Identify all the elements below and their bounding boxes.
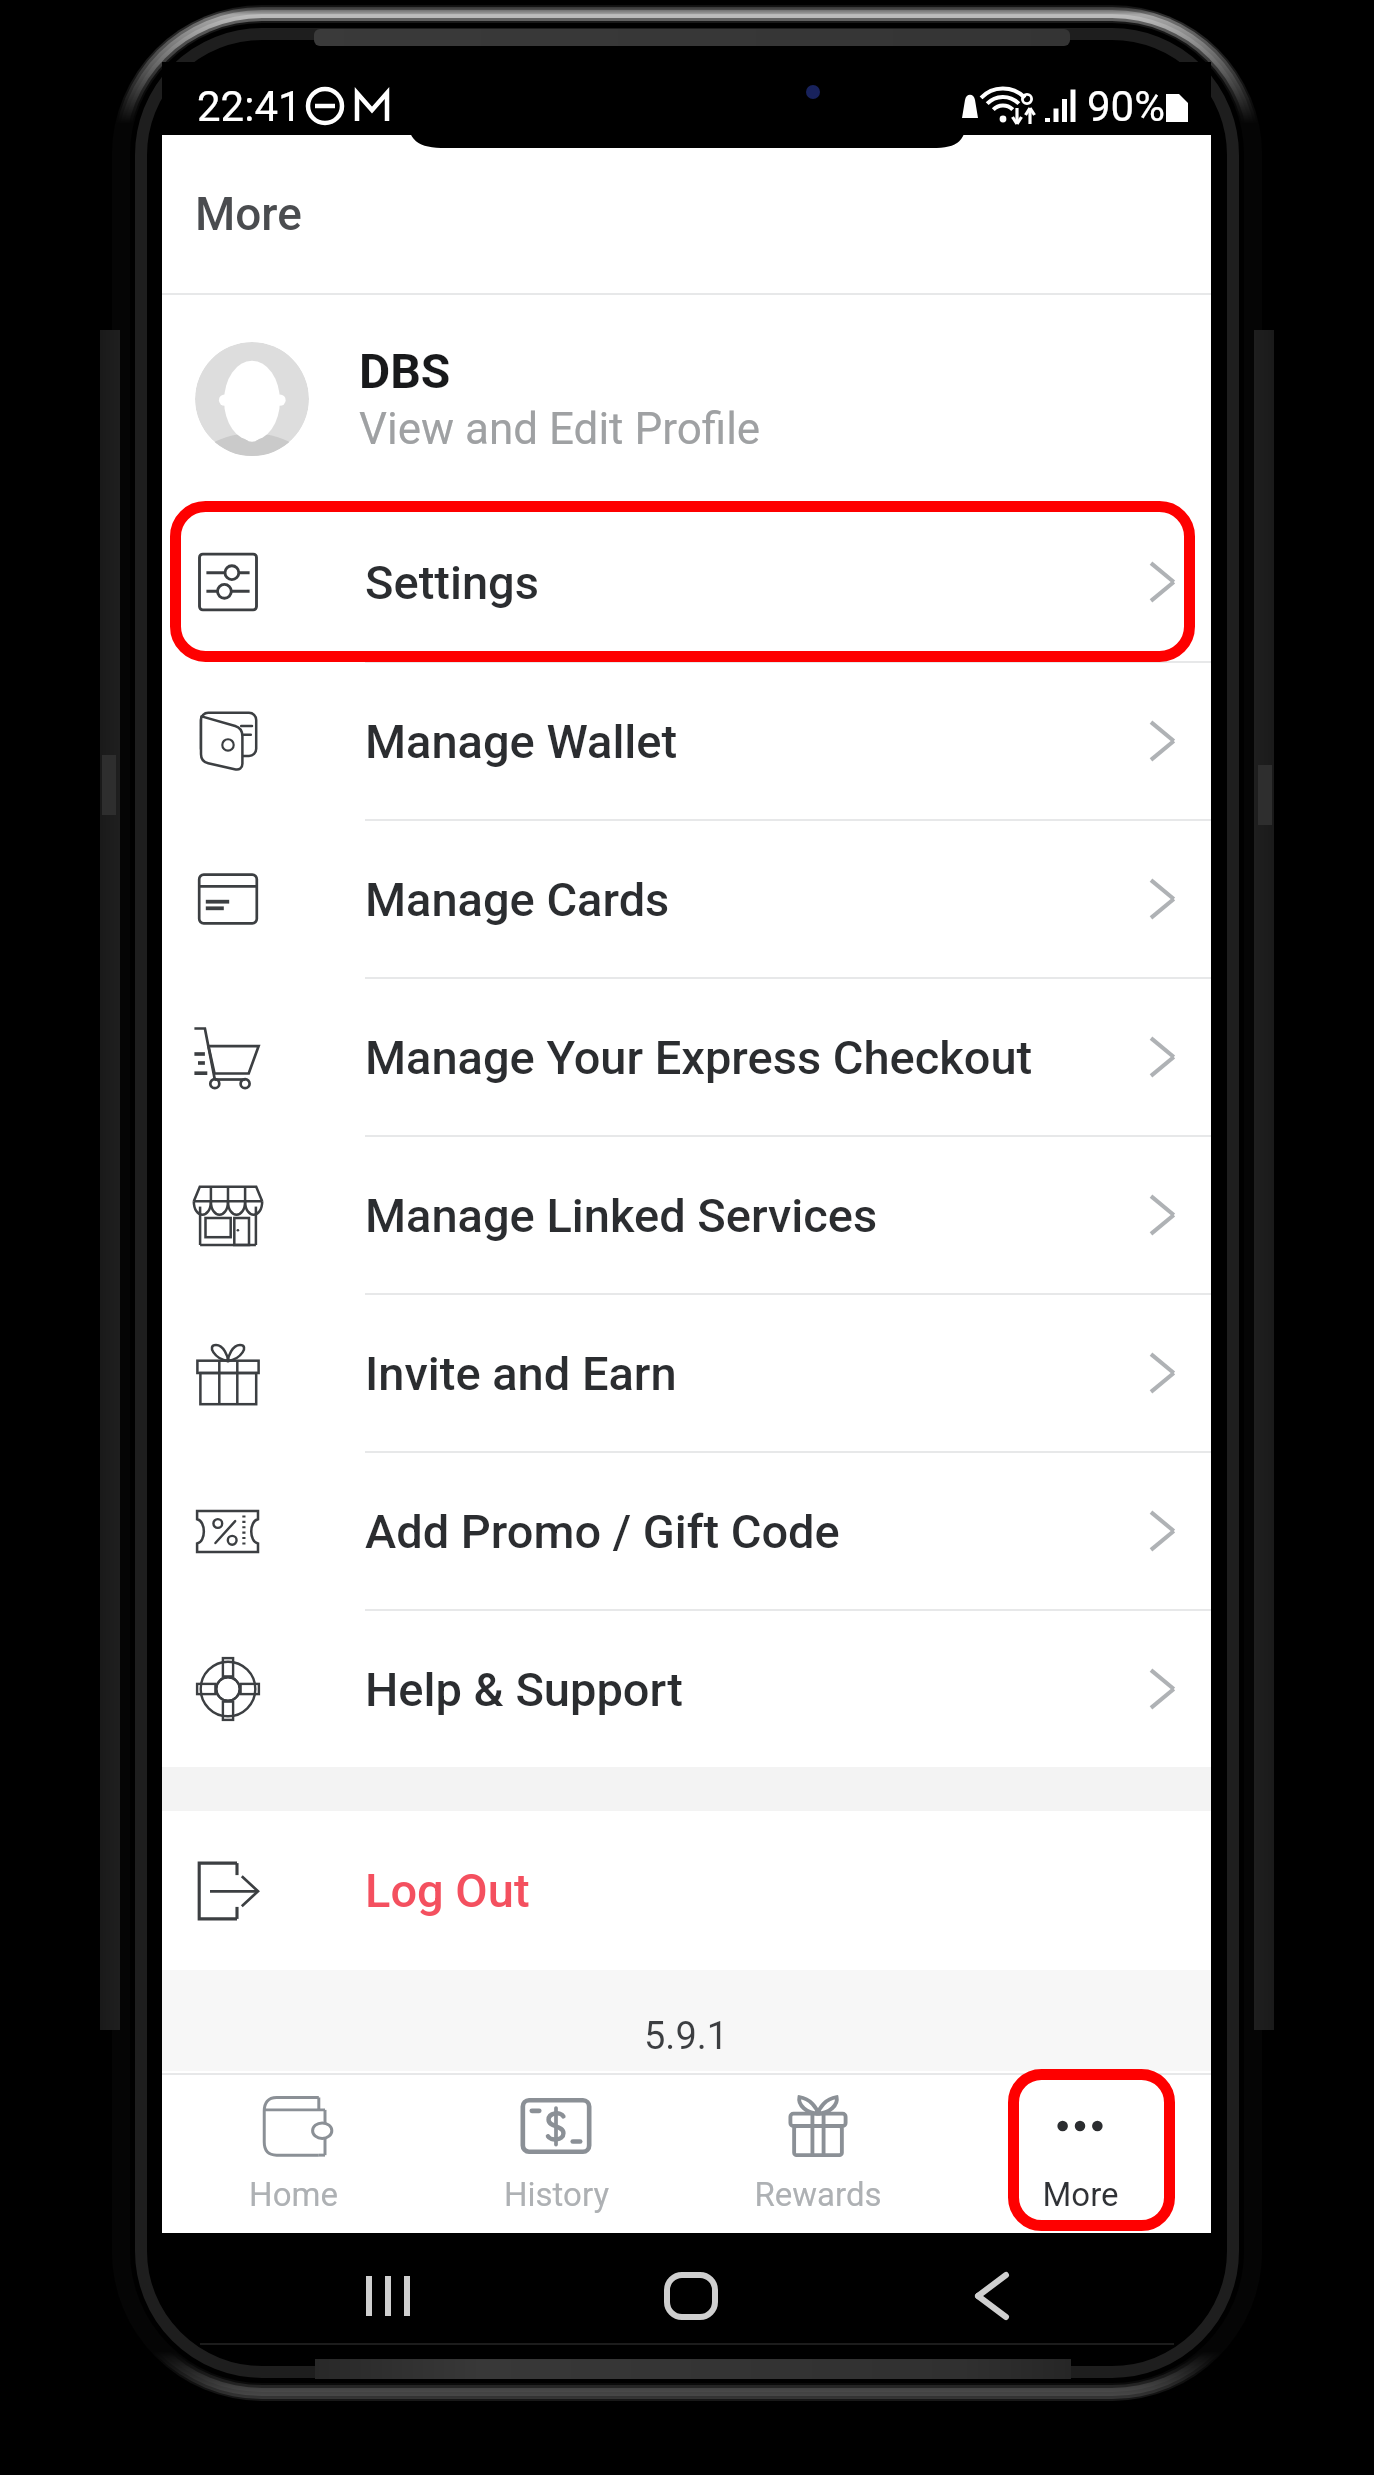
button[interactable]: Manage Linked Services [162, 1137, 1211, 1293]
staticText: DBS [359, 343, 451, 399]
staticText: Invite and Earn [365, 1346, 1130, 1401]
staticText: Manage Linked Services [365, 1188, 1130, 1243]
staticText: View and Edit Profile [359, 403, 761, 455]
staticText: 90% [1087, 82, 1165, 131]
staticText: 5.9.1 [644, 2014, 729, 2059]
button[interactable]: Rewards [687, 2073, 949, 2233]
button[interactable]: Invite and Earn [162, 1295, 1211, 1451]
staticText: Rewards [754, 2175, 882, 2214]
staticText: Help & Support [365, 1662, 1130, 1717]
staticText: Manage Cards [365, 872, 1130, 927]
staticText: Manage Your Express Checkout [365, 1030, 1130, 1085]
button[interactable]: History [425, 2073, 687, 2233]
staticText: 22:41 [197, 82, 302, 131]
button[interactable]: Help & Support [162, 1611, 1211, 1767]
button[interactable]: More [949, 2073, 1211, 2233]
staticText: Home [249, 2175, 338, 2214]
staticText: More [195, 187, 302, 241]
staticText: More [1042, 2175, 1119, 2214]
button[interactable]: Log Out [162, 1811, 1211, 1970]
button[interactable]: Manage Your Express Checkout [162, 979, 1211, 1135]
button[interactable]: Manage Cards [162, 821, 1211, 977]
staticText: Log Out [365, 1863, 530, 1918]
button[interactable]: Add Promo / Gift Code [162, 1453, 1211, 1609]
staticText: History [504, 2175, 609, 2214]
staticText: Add Promo / Gift Code [365, 1504, 1130, 1559]
staticText: Manage Wallet [365, 714, 1130, 769]
button[interactable]: DBS, View and Edit Profile [162, 295, 1211, 503]
button[interactable]: Settings [162, 503, 1211, 661]
button[interactable]: Home [162, 2073, 425, 2233]
staticText: Settings [365, 555, 1130, 610]
button[interactable]: Manage Wallet [162, 663, 1211, 819]
